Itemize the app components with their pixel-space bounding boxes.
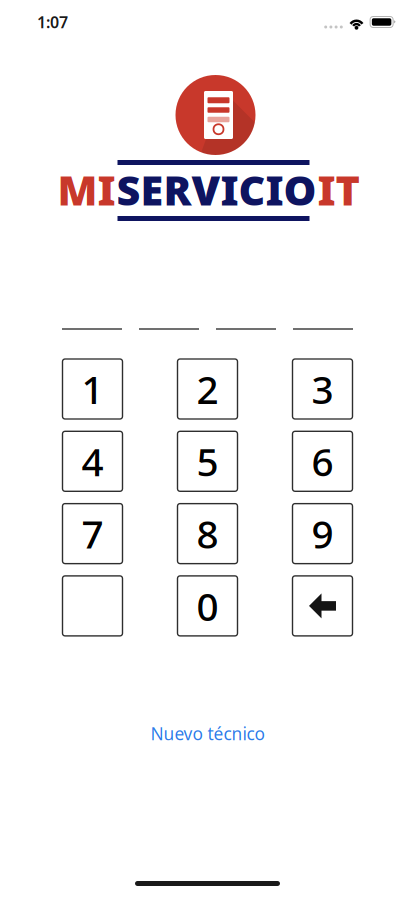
button[interactable]: 7: [62, 504, 122, 564]
button[interactable]: [62, 576, 122, 636]
button[interactable]: 3: [292, 359, 352, 419]
staticText: IT: [317, 162, 359, 217]
staticText: 1: [81, 363, 103, 415]
button[interactable]: 8: [177, 504, 237, 564]
staticText: 2: [196, 363, 218, 415]
button[interactable]: Nuevo técnico: [140, 724, 274, 743]
staticText: MI: [57, 162, 115, 217]
staticText: 8: [196, 508, 218, 559]
staticText: 1:07: [37, 11, 68, 33]
staticText: 7: [81, 508, 103, 559]
staticText: Nuevo técnico: [150, 722, 264, 745]
button[interactable]: 1: [62, 359, 122, 419]
button[interactable]: 9: [292, 504, 352, 564]
button[interactable]: 6: [292, 431, 352, 491]
staticText: 4: [81, 436, 103, 487]
staticText: 3: [311, 363, 333, 415]
button[interactable]: 0: [177, 576, 237, 636]
button[interactable]: 4: [62, 431, 122, 491]
button[interactable]: 5: [177, 431, 237, 491]
staticText: 9: [311, 508, 333, 559]
staticText: 6: [311, 436, 333, 487]
staticText: 5: [196, 436, 218, 487]
staticText: SERVICIO: [116, 162, 316, 217]
button[interactable]: [292, 576, 352, 636]
button[interactable]: 2: [177, 359, 237, 419]
staticText: 0: [196, 580, 218, 631]
